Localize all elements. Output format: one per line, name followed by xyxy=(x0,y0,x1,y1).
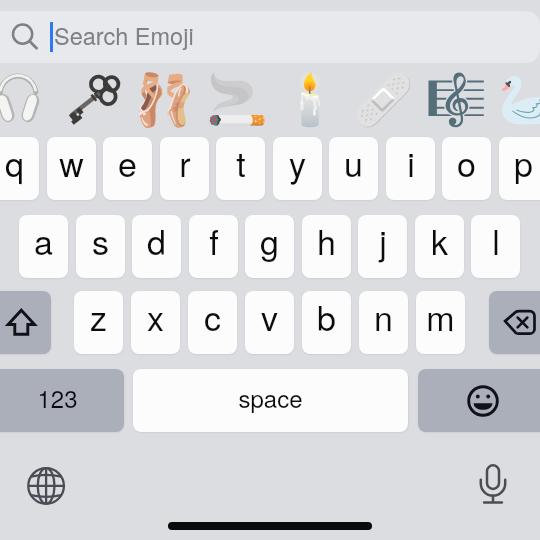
staticText: 🩹 xyxy=(352,71,414,130)
button[interactable]: l xyxy=(471,215,520,278)
button[interactable]: Key xyxy=(60,70,122,130)
button[interactable]: h xyxy=(302,215,351,278)
staticText: h xyxy=(317,216,336,265)
staticText: f xyxy=(209,216,219,265)
staticText: 🕯️ xyxy=(279,71,341,130)
staticText: a xyxy=(34,216,53,265)
button[interactable]: Headphone xyxy=(0,70,49,130)
staticText: p xyxy=(514,138,533,187)
button[interactable]: d xyxy=(132,215,181,278)
button[interactable]: Emoji keyboard xyxy=(418,369,540,432)
button[interactable]: Switch keyboard xyxy=(20,459,74,513)
button[interactable]: v xyxy=(245,291,294,354)
button[interactable]: t xyxy=(216,137,265,200)
button[interactable]: q xyxy=(0,137,39,200)
button[interactable]: 123 xyxy=(0,369,124,432)
staticText: 🚬 xyxy=(206,71,268,130)
button[interactable]: Ballet shoes xyxy=(133,70,195,130)
staticText: z xyxy=(90,292,107,341)
button[interactable]: a xyxy=(19,215,68,278)
staticText: Search Emoji xyxy=(54,18,194,52)
button[interactable]: z xyxy=(74,291,123,354)
button[interactable]: j xyxy=(358,215,407,278)
button[interactable]: x xyxy=(131,291,180,354)
staticText: q xyxy=(5,138,24,187)
button[interactable]: Candle xyxy=(279,70,341,130)
button[interactable]: Swan xyxy=(498,70,540,130)
button[interactable]: b xyxy=(302,291,351,354)
staticText: j xyxy=(379,216,387,265)
staticText: g xyxy=(260,216,279,265)
staticText: k xyxy=(431,216,448,265)
button[interactable]: Search Emoji xyxy=(0,11,540,63)
button[interactable]: u xyxy=(329,137,378,200)
staticText: e xyxy=(118,138,137,187)
button[interactable]: y xyxy=(273,137,322,200)
staticText: y xyxy=(289,138,306,187)
button[interactable]: s xyxy=(76,215,125,278)
staticText: 🦢 xyxy=(498,71,540,130)
button[interactable]: Shift xyxy=(0,291,51,354)
button[interactable]: g xyxy=(245,215,294,278)
button[interactable]: Backspace xyxy=(489,291,540,354)
button[interactable]: w xyxy=(47,137,96,200)
staticText: v xyxy=(261,292,278,341)
staticText: x xyxy=(147,292,164,341)
staticText: r xyxy=(179,138,191,187)
button[interactable]: i xyxy=(386,137,435,200)
staticText: t xyxy=(236,138,246,187)
button[interactable]: e xyxy=(103,137,152,200)
staticText: l xyxy=(492,216,500,265)
button[interactable]: o xyxy=(442,137,491,200)
staticText: o xyxy=(457,138,476,187)
staticText: b xyxy=(317,292,336,341)
staticText: i xyxy=(407,138,415,187)
button[interactable]: Bandage xyxy=(352,70,414,130)
staticText: d xyxy=(147,216,166,265)
staticText: 123 xyxy=(37,380,78,414)
button[interactable]: Cigarette xyxy=(206,70,268,130)
staticText: 🎼 xyxy=(425,71,487,130)
staticText: c xyxy=(204,292,221,341)
staticText: w xyxy=(59,138,84,187)
button[interactable]: k xyxy=(415,215,464,278)
button[interactable]: p xyxy=(499,137,540,200)
button[interactable]: c xyxy=(188,291,237,354)
button[interactable]: Musical score xyxy=(425,70,487,130)
staticText: m xyxy=(426,292,455,341)
button[interactable]: m xyxy=(416,291,465,354)
button[interactable]: n xyxy=(359,291,408,354)
button[interactable]: f xyxy=(189,215,238,278)
staticText: s xyxy=(92,216,109,265)
staticText: 🩰 xyxy=(133,71,195,130)
button[interactable]: r xyxy=(160,137,209,200)
staticText: space xyxy=(238,380,303,414)
staticText: n xyxy=(374,292,393,341)
staticText: u xyxy=(344,138,363,187)
button[interactable]: space xyxy=(133,369,408,432)
button[interactable]: Dictation xyxy=(466,459,520,513)
